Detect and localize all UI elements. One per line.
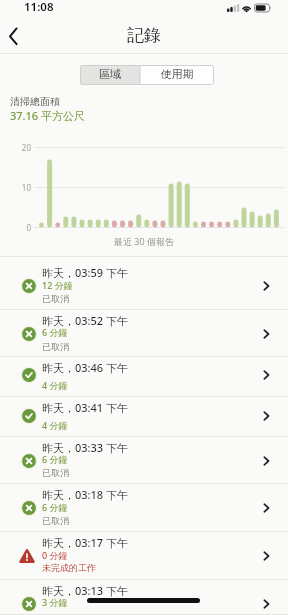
staticText: 已取消 — [42, 515, 69, 526]
staticText: 11:08 — [24, 0, 54, 15]
staticText: 記錄 — [0, 25, 288, 46]
staticText: 6 分鐘 — [42, 501, 68, 513]
staticText: 6 分鐘 — [42, 453, 68, 465]
staticText: 昨天，03:41 下午 — [42, 400, 129, 415]
staticText: 37.16 平方公尺 — [10, 108, 86, 123]
staticText: 20 — [0, 142, 31, 153]
staticText: 0 — [0, 222, 31, 233]
button[interactable]: 區域 — [80, 65, 140, 85]
staticText: 已取消 — [42, 293, 69, 304]
staticText: 昨天，03:17 下午 — [42, 535, 129, 550]
button[interactable]: 昨天，03:59 下午 — [0, 256, 288, 310]
button[interactable]: 昨天，03:17 下午 — [0, 532, 288, 580]
staticText: 昨天，03:46 下午 — [42, 360, 129, 375]
button[interactable]: 使用期 — [140, 65, 214, 85]
staticText: 4 分鐘 — [42, 419, 68, 431]
staticText: 昨天，03:59 下午 — [42, 265, 129, 280]
button[interactable] — [8, 27, 19, 46]
button[interactable]: 昨天，03:52 下午 — [0, 310, 288, 357]
staticText: 清掃總面積 — [10, 95, 60, 108]
staticText: 10 — [0, 182, 31, 193]
staticText: 未完成的工作 — [42, 562, 96, 573]
staticText: 12 分鐘 — [42, 279, 73, 291]
staticText: 昨天，03:13 下午 — [42, 583, 129, 598]
staticText: 最近 30 個報告 — [0, 235, 288, 247]
staticText: 已取消 — [42, 467, 69, 478]
staticText: 6 分鐘 — [42, 326, 68, 338]
staticText: 0 分鐘 — [42, 549, 68, 561]
button[interactable]: 昨天，03:41 下午 — [0, 397, 288, 437]
button[interactable]: 昨天，03:13 下午 — [0, 580, 288, 615]
button[interactable]: 昨天，03:46 下午 — [0, 357, 288, 397]
button[interactable]: 昨天，03:18 下午 — [0, 484, 288, 532]
staticText: 區域 — [80, 67, 140, 81]
staticText: 已取消 — [42, 341, 69, 352]
button[interactable]: 昨天，03:33 下午 — [0, 437, 288, 484]
staticText: 昨天，03:18 下午 — [42, 487, 129, 502]
staticText: 3 分鐘 — [42, 596, 68, 608]
staticText: 使用期 — [140, 67, 214, 81]
staticText: 4 分鐘 — [42, 379, 68, 391]
staticText: 昨天，03:33 下午 — [42, 440, 129, 455]
staticText: 昨天，03:52 下午 — [42, 313, 129, 328]
